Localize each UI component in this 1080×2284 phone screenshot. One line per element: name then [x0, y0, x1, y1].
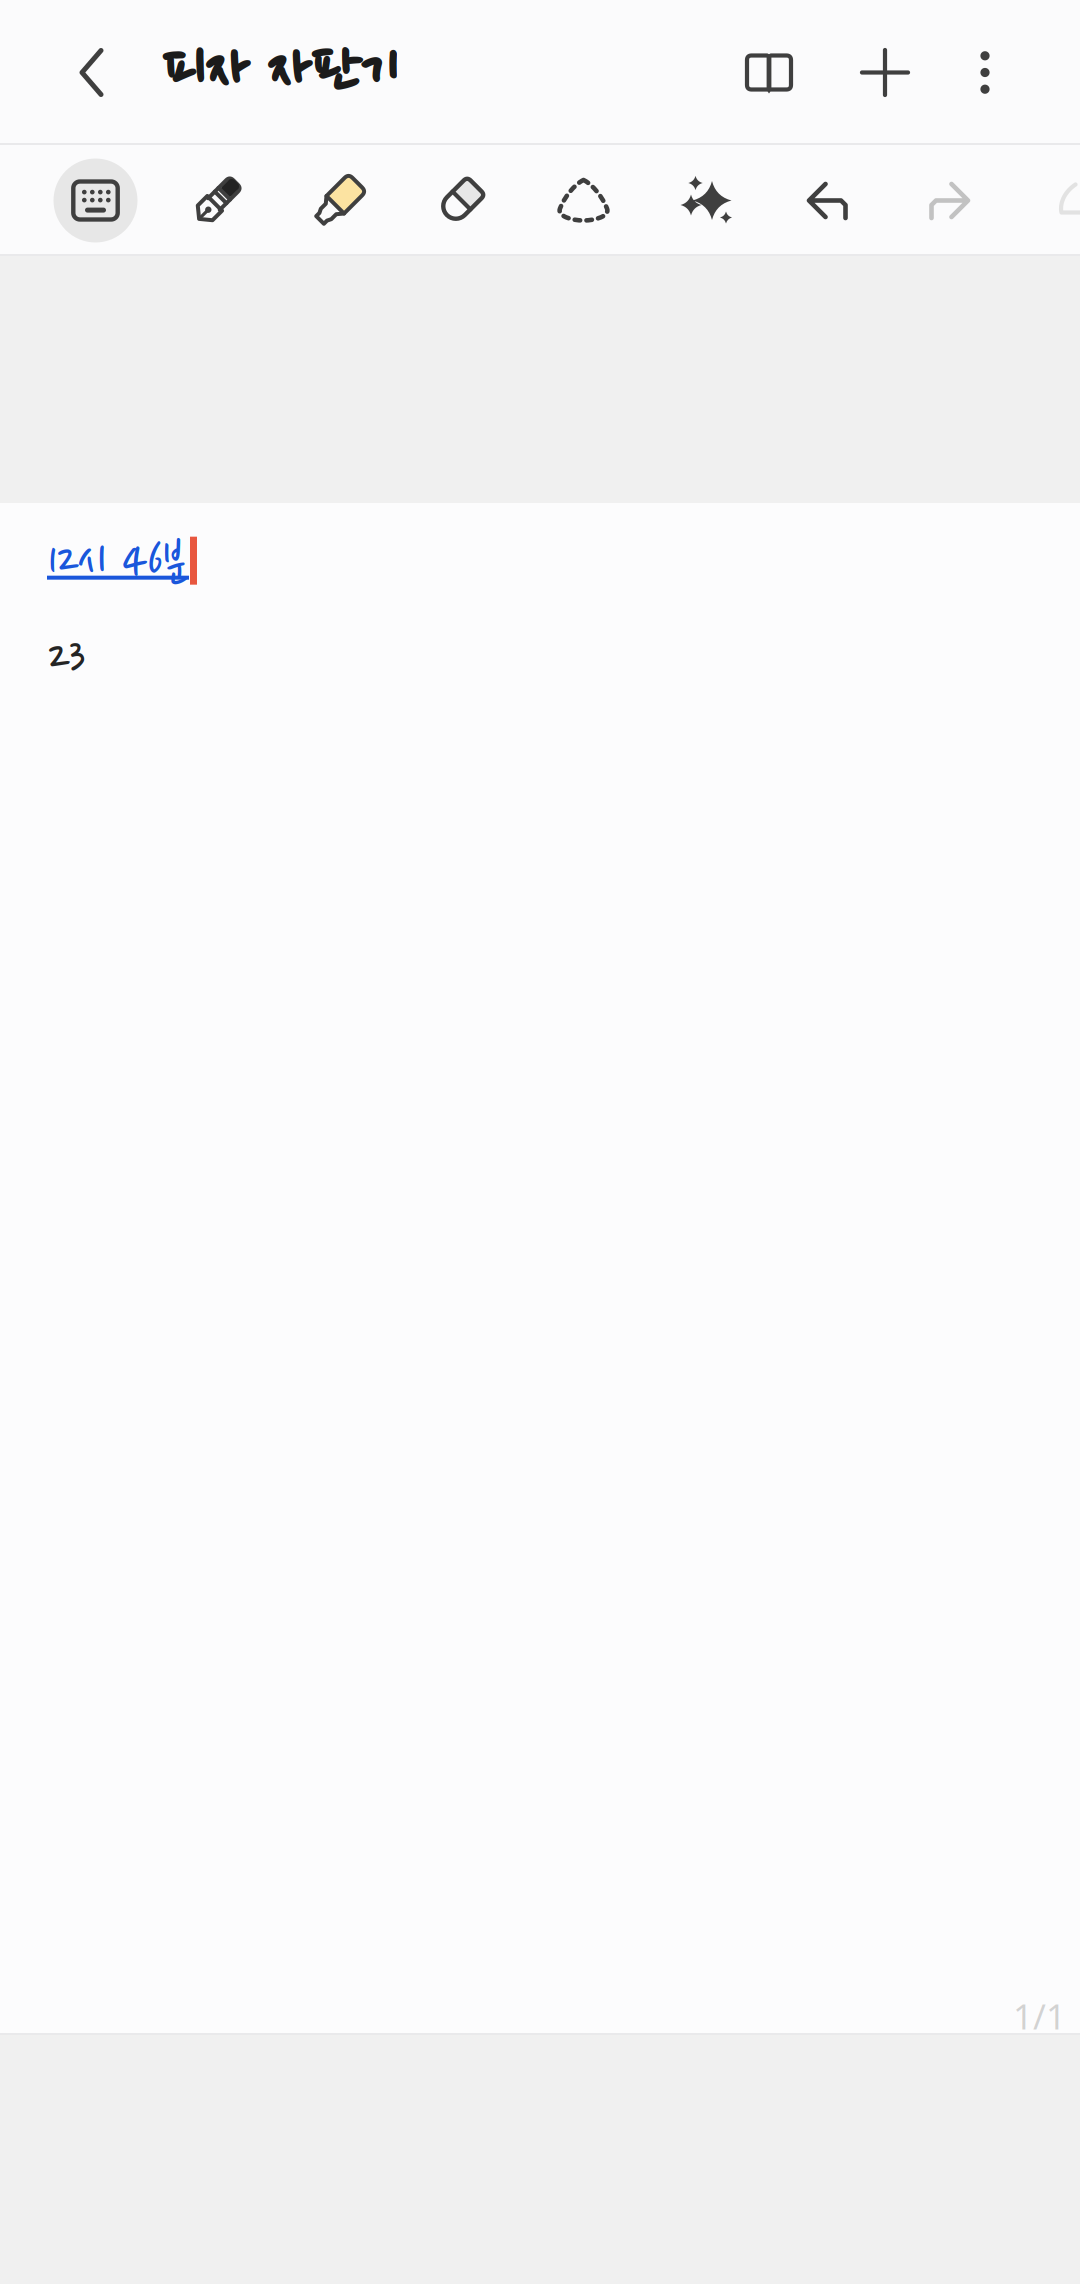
- button[interactable]: Highlighter: [278, 145, 400, 256]
- button[interactable]: Undo: [766, 145, 888, 256]
- button[interactable]: Back: [41, 17, 145, 127]
- button[interactable]: More options: [935, 17, 1035, 127]
- button[interactable]: Eraser: [400, 145, 522, 256]
- staticText: 1/1: [1013, 1993, 1066, 2039]
- staticText: 23: [48, 633, 85, 687]
- staticText: 12시 46분: [47, 536, 188, 591]
- button[interactable]: More tools: [1010, 145, 1080, 256]
- button[interactable]: 피자 자판기: [145, 17, 398, 127]
- button[interactable]: Redo: [888, 145, 1010, 256]
- button[interactable]: Keyboard: [34, 145, 156, 256]
- button[interactable]: AI assist: [644, 145, 766, 256]
- button[interactable]: 12시 46분: [47, 536, 189, 595]
- button[interactable]: Select: [522, 145, 644, 256]
- staticText: 피자 자판기: [162, 38, 398, 107]
- button[interactable]: New note: [827, 17, 943, 127]
- button[interactable]: Pen: [156, 145, 278, 256]
- button[interactable]: Reading view: [711, 17, 827, 127]
